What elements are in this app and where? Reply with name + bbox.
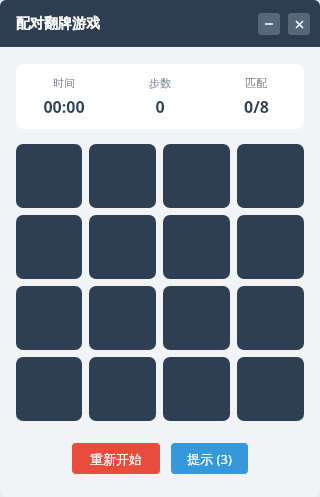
button[interactable]: Minimize	[258, 13, 280, 35]
staticText: 时间	[53, 76, 75, 90]
button[interactable]: Memory card	[163, 286, 230, 350]
button[interactable]: Memory card	[237, 357, 304, 421]
button[interactable]: Memory card	[163, 357, 230, 421]
staticText: 0/8	[244, 96, 269, 118]
staticText: 匹配	[245, 76, 267, 90]
button[interactable]: Memory card	[89, 144, 156, 208]
button[interactable]: Memory card	[237, 286, 304, 350]
button[interactable]: Memory card	[89, 286, 156, 350]
button[interactable]: Memory card	[237, 144, 304, 208]
staticText: 提示 (3)	[187, 450, 232, 468]
staticText: 配对翻牌游戏	[16, 15, 100, 33]
button[interactable]: Memory card	[163, 144, 230, 208]
staticText: 0	[155, 96, 165, 118]
button[interactable]: Memory card	[163, 215, 230, 279]
button[interactable]: Memory card	[16, 357, 82, 421]
staticText: 00:00	[43, 96, 85, 118]
staticText: 步数	[149, 76, 171, 90]
button[interactable]: Close	[288, 13, 310, 35]
button[interactable]: Memory card	[16, 215, 82, 279]
button[interactable]: Memory card	[89, 357, 156, 421]
button[interactable]: 提示 (3)	[171, 443, 248, 474]
staticText: 重新开始	[90, 451, 142, 467]
button[interactable]: Memory card	[89, 215, 156, 279]
button[interactable]: Memory card	[16, 144, 82, 208]
button[interactable]: Memory card	[16, 286, 82, 350]
button[interactable]: Memory card	[237, 215, 304, 279]
button[interactable]: 重新开始	[72, 443, 160, 474]
